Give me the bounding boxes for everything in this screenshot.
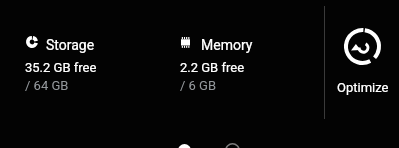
staticText: 2.2 GB free bbox=[180, 60, 245, 75]
staticText: / 6 GB bbox=[180, 78, 217, 93]
staticText: / 64 GB bbox=[25, 78, 69, 93]
staticText: Storage bbox=[46, 37, 95, 53]
button[interactable] bbox=[167, 20, 317, 105]
button[interactable] bbox=[12, 20, 162, 105]
staticText: Optimize bbox=[337, 80, 389, 95]
button[interactable]: Optimize bbox=[332, 22, 394, 100]
staticText: Memory bbox=[201, 37, 253, 53]
staticText: 35.2 GB free bbox=[25, 60, 97, 75]
